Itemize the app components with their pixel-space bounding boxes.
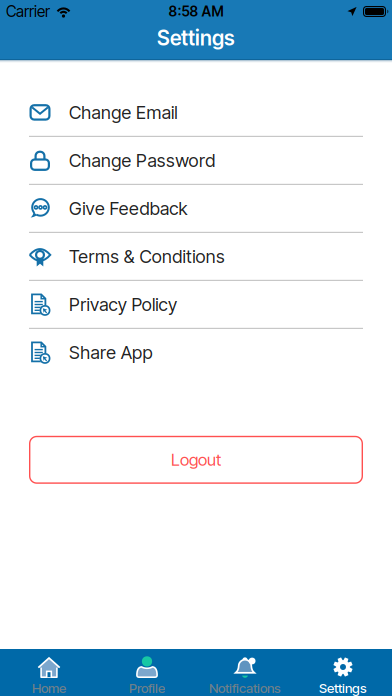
button[interactable]: Notifications xyxy=(196,649,294,696)
staticText: Settings xyxy=(157,25,235,50)
button[interactable]: Home xyxy=(0,649,98,696)
staticText: Logout xyxy=(171,450,221,470)
staticText: Carrier xyxy=(6,2,50,21)
staticText: Profile xyxy=(129,680,165,696)
button[interactable]: Terms & Conditions xyxy=(0,233,392,280)
staticText: Share App xyxy=(69,341,152,363)
button[interactable]: Settings xyxy=(294,649,392,696)
staticText: Privacy Policy xyxy=(69,293,177,315)
button[interactable]: Share App xyxy=(0,329,392,376)
button[interactable]: Profile xyxy=(98,649,196,696)
button[interactable]: Give Feedback xyxy=(0,185,392,232)
staticText: Settings xyxy=(319,680,367,696)
button[interactable]: Logout xyxy=(29,436,363,484)
staticText: Notifications xyxy=(209,680,281,696)
staticText: Give Feedback xyxy=(69,197,188,219)
staticText: Home xyxy=(32,680,66,696)
staticText: Change Password xyxy=(69,149,215,171)
staticText: 8:58 AM xyxy=(168,3,223,20)
staticText: Terms & Conditions xyxy=(69,245,225,267)
button[interactable]: Change Password xyxy=(0,137,392,184)
button[interactable]: Privacy Policy xyxy=(0,281,392,328)
staticText: Change Email xyxy=(69,101,177,123)
button[interactable]: Change Email xyxy=(0,89,392,136)
